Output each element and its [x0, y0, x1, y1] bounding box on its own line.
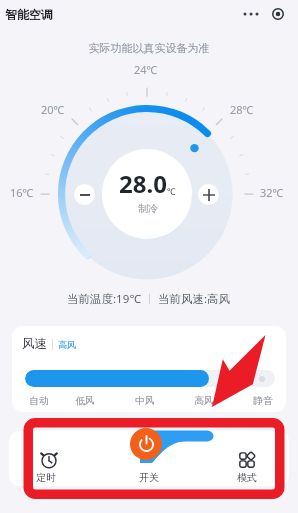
staticText: 28.0 [119, 167, 167, 200]
staticText: 16℃ [10, 185, 34, 200]
staticText: 当前温度:19℃ [67, 291, 141, 307]
staticText: 24℃ [134, 62, 158, 77]
staticText: 28℃ [230, 102, 254, 117]
staticText: 当前风速:高风 [158, 291, 231, 307]
staticText: 模式 [220, 471, 274, 484]
staticText: 自动 [29, 395, 49, 407]
staticText: 32℃ [260, 185, 284, 200]
staticText: 中风 [135, 395, 155, 407]
button[interactable]: Device status [267, 3, 289, 25]
staticText: ℃ [167, 185, 176, 197]
button[interactable]: 开关 [122, 446, 176, 486]
button[interactable]: 自动 [23, 395, 55, 407]
button[interactable]: 高风 [188, 395, 220, 407]
button[interactable]: Increase temperature [198, 184, 219, 205]
button[interactable]: 静音 [247, 395, 279, 407]
button[interactable]: 模式 [220, 446, 274, 486]
button[interactable]: Decrease temperature [74, 184, 95, 205]
staticText: 20℃ [41, 102, 65, 117]
staticText: 静音 [253, 395, 273, 407]
staticText: 低风 [75, 395, 95, 407]
staticText: 开关 [122, 471, 176, 484]
staticText: 实际功能以真实设备为准 [0, 41, 298, 55]
staticText: 风速 [22, 336, 47, 352]
button[interactable]: More options [240, 3, 262, 25]
staticText: 高风 [58, 339, 76, 350]
button[interactable]: 低风 [69, 395, 101, 407]
staticText: 高风 [194, 395, 214, 407]
staticText: 制冷 [138, 202, 158, 215]
staticText: 定时 [19, 471, 73, 484]
button[interactable]: 中风 [129, 395, 161, 407]
button[interactable]: Fan speed slider [25, 370, 275, 387]
staticText: 智能空调 [5, 7, 53, 22]
button[interactable]: 定时 [19, 446, 73, 486]
button[interactable]: Power [130, 428, 162, 460]
